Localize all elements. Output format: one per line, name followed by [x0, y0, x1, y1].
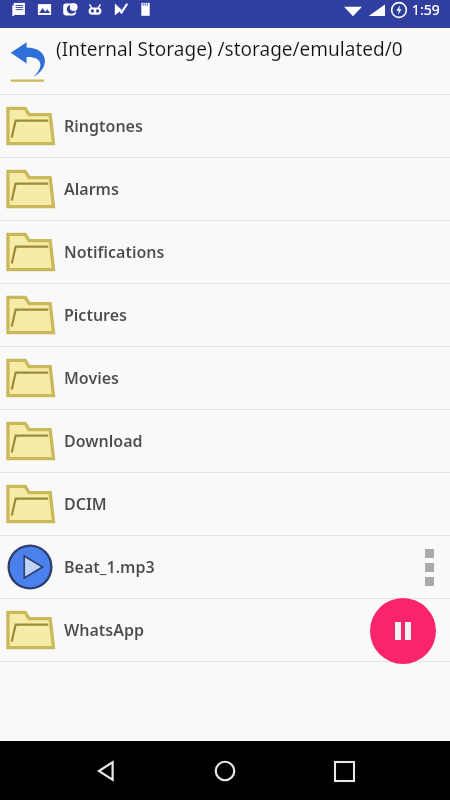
staticText: Download: [64, 430, 143, 452]
button[interactable]: Beat_1.mp3: [0, 536, 450, 598]
button[interactable]: Pause playback: [370, 598, 436, 664]
button[interactable]: Ringtones: [0, 95, 450, 157]
staticText: Ringtones: [64, 115, 143, 137]
button[interactable]: Home: [201, 747, 249, 795]
button[interactable]: More options: [408, 536, 450, 598]
button[interactable]: Alarms: [0, 158, 450, 220]
staticText: Alarms: [64, 178, 119, 200]
button[interactable]: Notifications: [0, 221, 450, 283]
button[interactable]: WhatsApp: [0, 599, 450, 661]
button[interactable]: Download: [0, 410, 450, 472]
button[interactable]: Pictures: [0, 284, 450, 346]
button[interactable]: DCIM: [0, 473, 450, 535]
button[interactable]: Back: [82, 747, 130, 795]
button[interactable]: Go up one directory: [6, 34, 56, 84]
staticText: Movies: [64, 367, 119, 389]
staticText: Beat_1.mp3: [64, 556, 155, 578]
button[interactable]: Recent apps: [320, 747, 368, 795]
staticText: WhatsApp: [64, 619, 144, 641]
button[interactable]: Movies: [0, 347, 450, 409]
staticText: 1:59: [412, 0, 440, 19]
staticText: (Internal Storage) /storage/emulated/0: [56, 36, 403, 62]
staticText: Notifications: [64, 241, 165, 263]
staticText: DCIM: [64, 493, 107, 515]
staticText: Pictures: [64, 304, 127, 326]
